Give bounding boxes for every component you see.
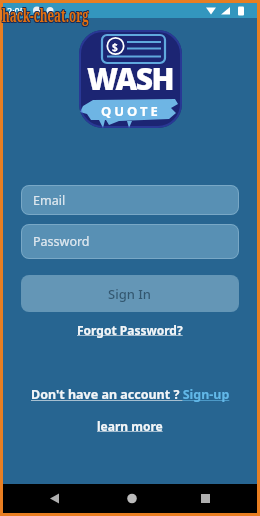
button[interactable]: Forgot Password? [77, 322, 183, 338]
button[interactable]: Don't have an account ? Sign-up [31, 386, 230, 403]
staticText: QUOTE [101, 102, 161, 120]
staticText: hack-cheat.org [3, 2, 90, 26]
button[interactable] [87, 484, 172, 513]
staticText: Email [33, 192, 66, 209]
staticText: hack-cheat.org [1, 2, 88, 26]
staticText: hack-cheat.org [1, 3, 88, 27]
staticText: hack-cheat.org [2, 4, 89, 28]
staticText: hack-cheat.org [3, 3, 90, 27]
staticText: hack-cheat.org [2, 2, 89, 26]
staticText: hack-cheat.org [1, 4, 88, 28]
staticText: $ [112, 40, 118, 54]
button[interactable]: Password [21, 224, 239, 259]
staticText: Sign In [108, 285, 152, 303]
button[interactable] [3, 484, 87, 513]
button[interactable]: learn more [97, 418, 163, 434]
staticText: hack-cheat.org [2, 3, 89, 27]
button[interactable]: Sign In [21, 275, 239, 312]
staticText: Password [33, 233, 90, 250]
staticText: hack-cheat.org [3, 4, 90, 28]
staticText: WASH [87, 58, 174, 99]
staticText: 2:05 [7, 5, 25, 17]
button[interactable] [172, 484, 257, 513]
button[interactable]: Email [21, 185, 239, 215]
